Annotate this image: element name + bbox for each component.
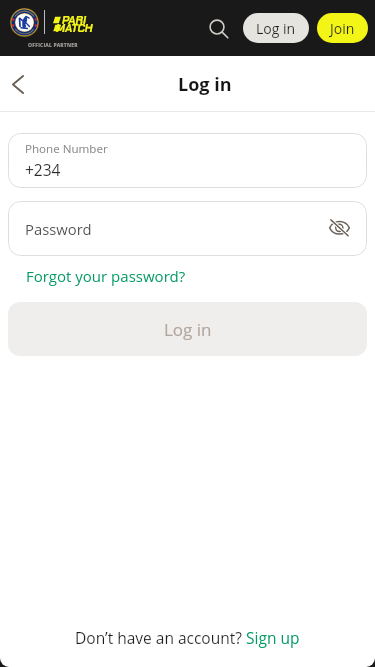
staticText: Join — [330, 19, 355, 38]
button[interactable]: Show password — [322, 212, 356, 246]
staticText: Log in — [164, 318, 212, 341]
staticText: MATCH — [56, 21, 93, 36]
staticText: Sign up — [246, 627, 300, 648]
staticText: PARI — [62, 13, 87, 28]
button[interactable]: Phone Number — [8, 133, 367, 188]
staticText: Don’t have an account? — [75, 627, 246, 648]
button[interactable]: Join — [317, 13, 368, 43]
button[interactable]: Sign up — [246, 627, 300, 648]
button[interactable]: Password — [8, 201, 367, 256]
staticText: Log in — [256, 19, 296, 38]
staticText: Log in — [178, 72, 232, 97]
staticText: Forgot your password? — [26, 266, 186, 286]
button[interactable]: Search — [206, 13, 236, 43]
button[interactable]: Forgot your password? — [18, 260, 194, 292]
staticText: +234 — [25, 159, 61, 180]
button[interactable]: Back — [0, 66, 36, 102]
staticText: Password — [25, 219, 92, 239]
button[interactable]: Log in — [243, 13, 309, 43]
staticText: Phone Number — [25, 141, 108, 157]
staticText: OFFICIAL PARTNER — [28, 42, 78, 49]
button[interactable]: Log in — [8, 302, 367, 356]
